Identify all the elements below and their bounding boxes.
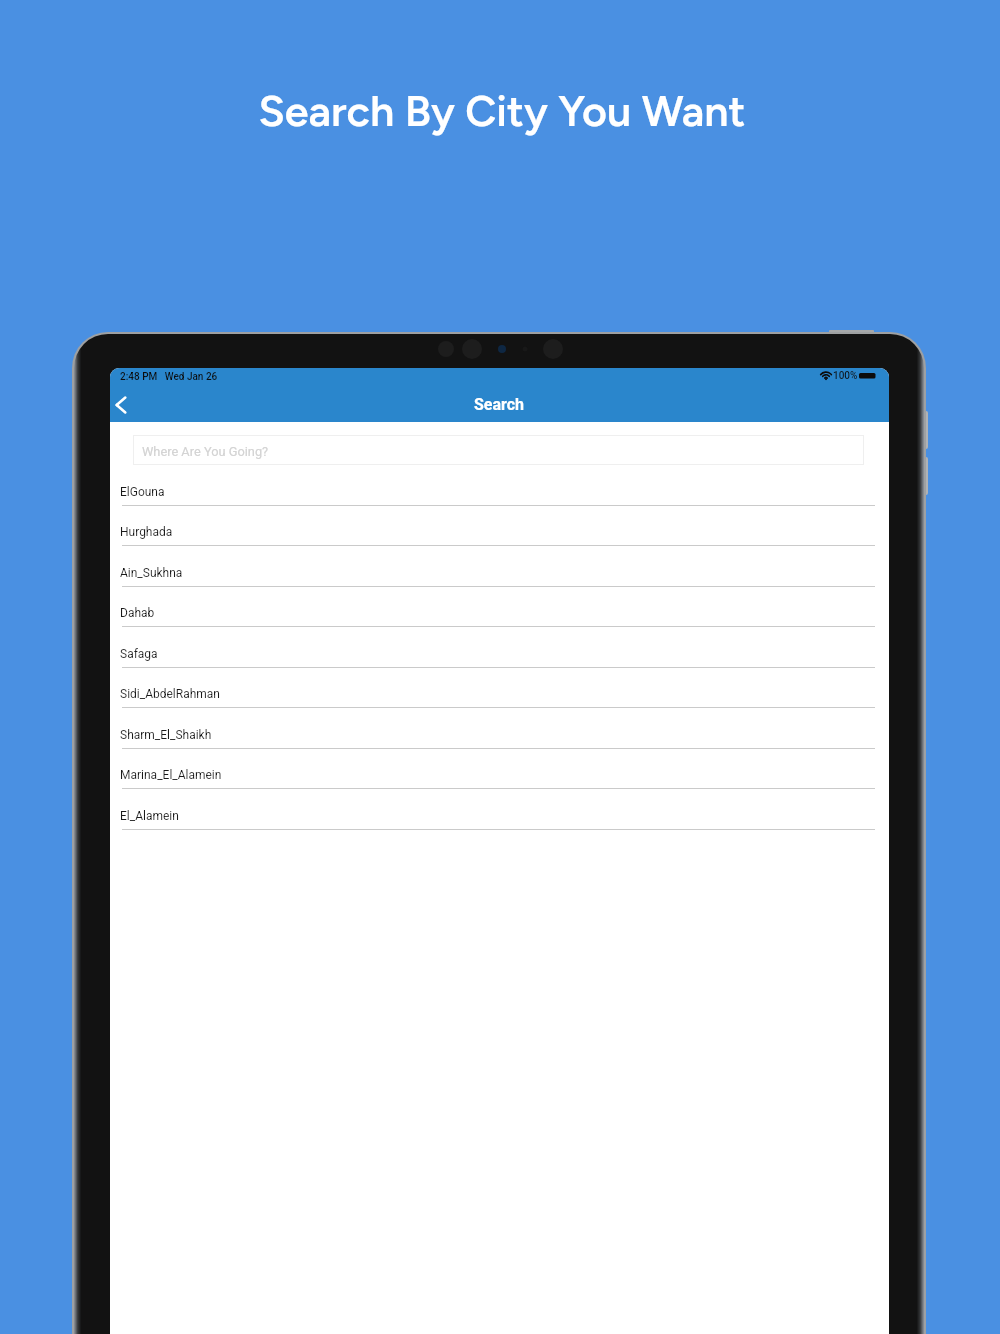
button[interactable]: ElGouna [110, 477, 889, 517]
staticText: Hurghada [120, 525, 173, 539]
staticText: Marina_El_Alamein [120, 768, 222, 782]
staticText: ElGouna [120, 485, 165, 499]
button[interactable]: Back [110, 388, 140, 422]
staticText: El_Alamein [120, 809, 179, 823]
staticText: Dahab [120, 606, 155, 620]
staticText: Search [474, 395, 525, 414]
staticText: Sharm_El_Shaikh [120, 728, 212, 742]
button[interactable]: El_Alamein [110, 801, 889, 841]
button[interactable]: Hurghada [110, 517, 889, 557]
staticText: Safaga [120, 647, 158, 661]
button[interactable]: Marina_El_Alamein [110, 760, 889, 800]
staticText: Where Are You Going? [142, 444, 269, 459]
button[interactable]: Dahab [110, 598, 889, 638]
button[interactable]: Safaga [110, 639, 889, 679]
button[interactable]: Sidi_AbdelRahman [110, 679, 889, 719]
staticText: Ain_Sukhna [120, 566, 183, 580]
staticText: 2:48 PM Wed Jan 26 [120, 371, 218, 383]
button[interactable]: Where Are You Going? [133, 435, 864, 465]
staticText: Search By City You Want [2, 85, 1000, 137]
button[interactable]: Ain_Sukhna [110, 558, 889, 598]
staticText: Sidi_AbdelRahman [120, 687, 220, 701]
button[interactable]: Sharm_El_Shaikh [110, 720, 889, 760]
staticText: 100% [833, 370, 858, 382]
